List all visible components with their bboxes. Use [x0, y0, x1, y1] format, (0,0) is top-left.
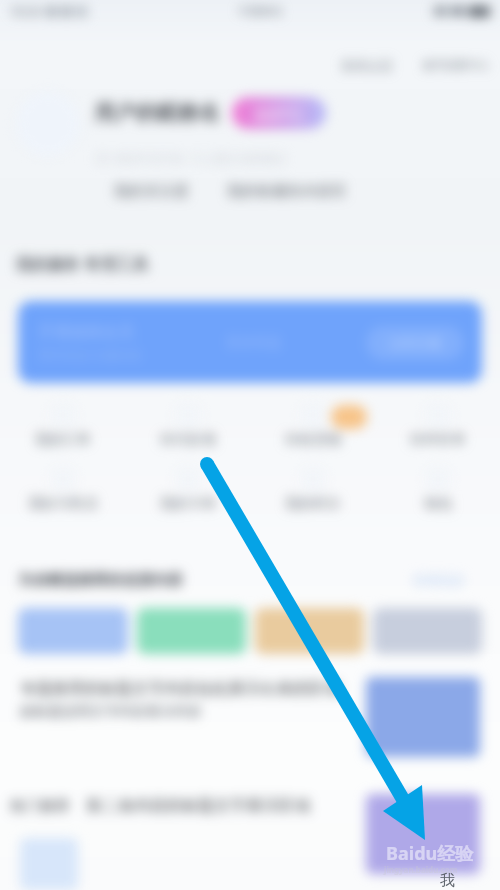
button[interactable]: 我的收藏夹内容区 — [225, 180, 349, 203]
button[interactable]: 会员中心 — [232, 97, 326, 129]
button[interactable]: 为你精选推荐的优质内容 — [18, 571, 183, 590]
button[interactable]: 钱包 — [375, 467, 500, 531]
button[interactable]: 专题推荐的标题文字内容在此展示出来的区域 — [20, 677, 480, 757]
staticText: 我的服务 常用工具 — [16, 253, 149, 275]
staticText: 待评价单 — [410, 431, 466, 449]
button[interactable]: 热门推荐 — [10, 794, 480, 874]
staticText: 我的关注度 — [114, 182, 189, 201]
staticText: 待收货物 — [285, 431, 341, 449]
staticText: 我的卡券 — [160, 495, 216, 513]
staticText: 我的收藏夹内容区 — [227, 182, 347, 201]
staticText: 热门推荐 — [10, 797, 70, 816]
staticText: 查看更多 — [413, 572, 465, 588]
button[interactable] — [373, 608, 482, 654]
button[interactable] — [137, 608, 246, 654]
staticText: 我的订单 — [35, 431, 91, 449]
button[interactable]: 待收货物 — [250, 403, 375, 467]
button[interactable]: Next article thumbnail — [20, 838, 78, 890]
staticText: 第二条内容的标题文字展示区域 — [86, 796, 310, 816]
staticText: 会员中心 — [255, 106, 303, 121]
staticText: 中国移动 — [238, 4, 282, 18]
button[interactable]: 开通超级会员 — [18, 301, 482, 383]
staticText: 我的积分 — [285, 495, 341, 513]
staticText: 实名认证 — [341, 57, 393, 73]
button[interactable]: 待评价单 — [375, 403, 500, 467]
staticText: 10:24 — [10, 3, 41, 19]
button[interactable]: 待付款项 — [125, 403, 250, 467]
button[interactable]: 退款与售后 — [0, 467, 125, 531]
staticText: 退款与售后 — [28, 495, 98, 513]
button[interactable]: 账号设置中心 — [419, 55, 493, 75]
button[interactable]: 实名认证 — [337, 54, 397, 76]
staticText: 待付款项 — [160, 431, 216, 449]
staticText: 我 — [440, 871, 455, 890]
staticText: 为你精选推荐的优质内容 — [18, 571, 183, 590]
button[interactable]: 我的服务 常用工具 — [16, 253, 149, 275]
button[interactable] — [18, 608, 128, 654]
staticText: 钱包 — [424, 495, 452, 513]
staticText: 副标题说明文字内容展示内容 — [20, 703, 202, 721]
button[interactable]: 查看更多 — [411, 570, 467, 590]
staticText: 专题推荐的标题文字内容在此展示出来的区域 — [20, 679, 340, 699]
button[interactable]: 我的卡券 — [125, 467, 250, 531]
button[interactable]: 我的关注度 — [112, 180, 191, 203]
button[interactable]: 我的订单 — [0, 403, 125, 467]
staticText: 用户的昵称名 — [94, 100, 220, 126]
button[interactable]: 立即开通 — [366, 326, 464, 360]
staticText: Baidu经验 — [386, 841, 474, 866]
staticText: jingyan.baidu.com — [384, 864, 458, 875]
staticText: 账号设置中心 — [423, 58, 489, 72]
button[interactable] — [255, 608, 364, 654]
button[interactable]: 我的积分 — [250, 467, 375, 531]
